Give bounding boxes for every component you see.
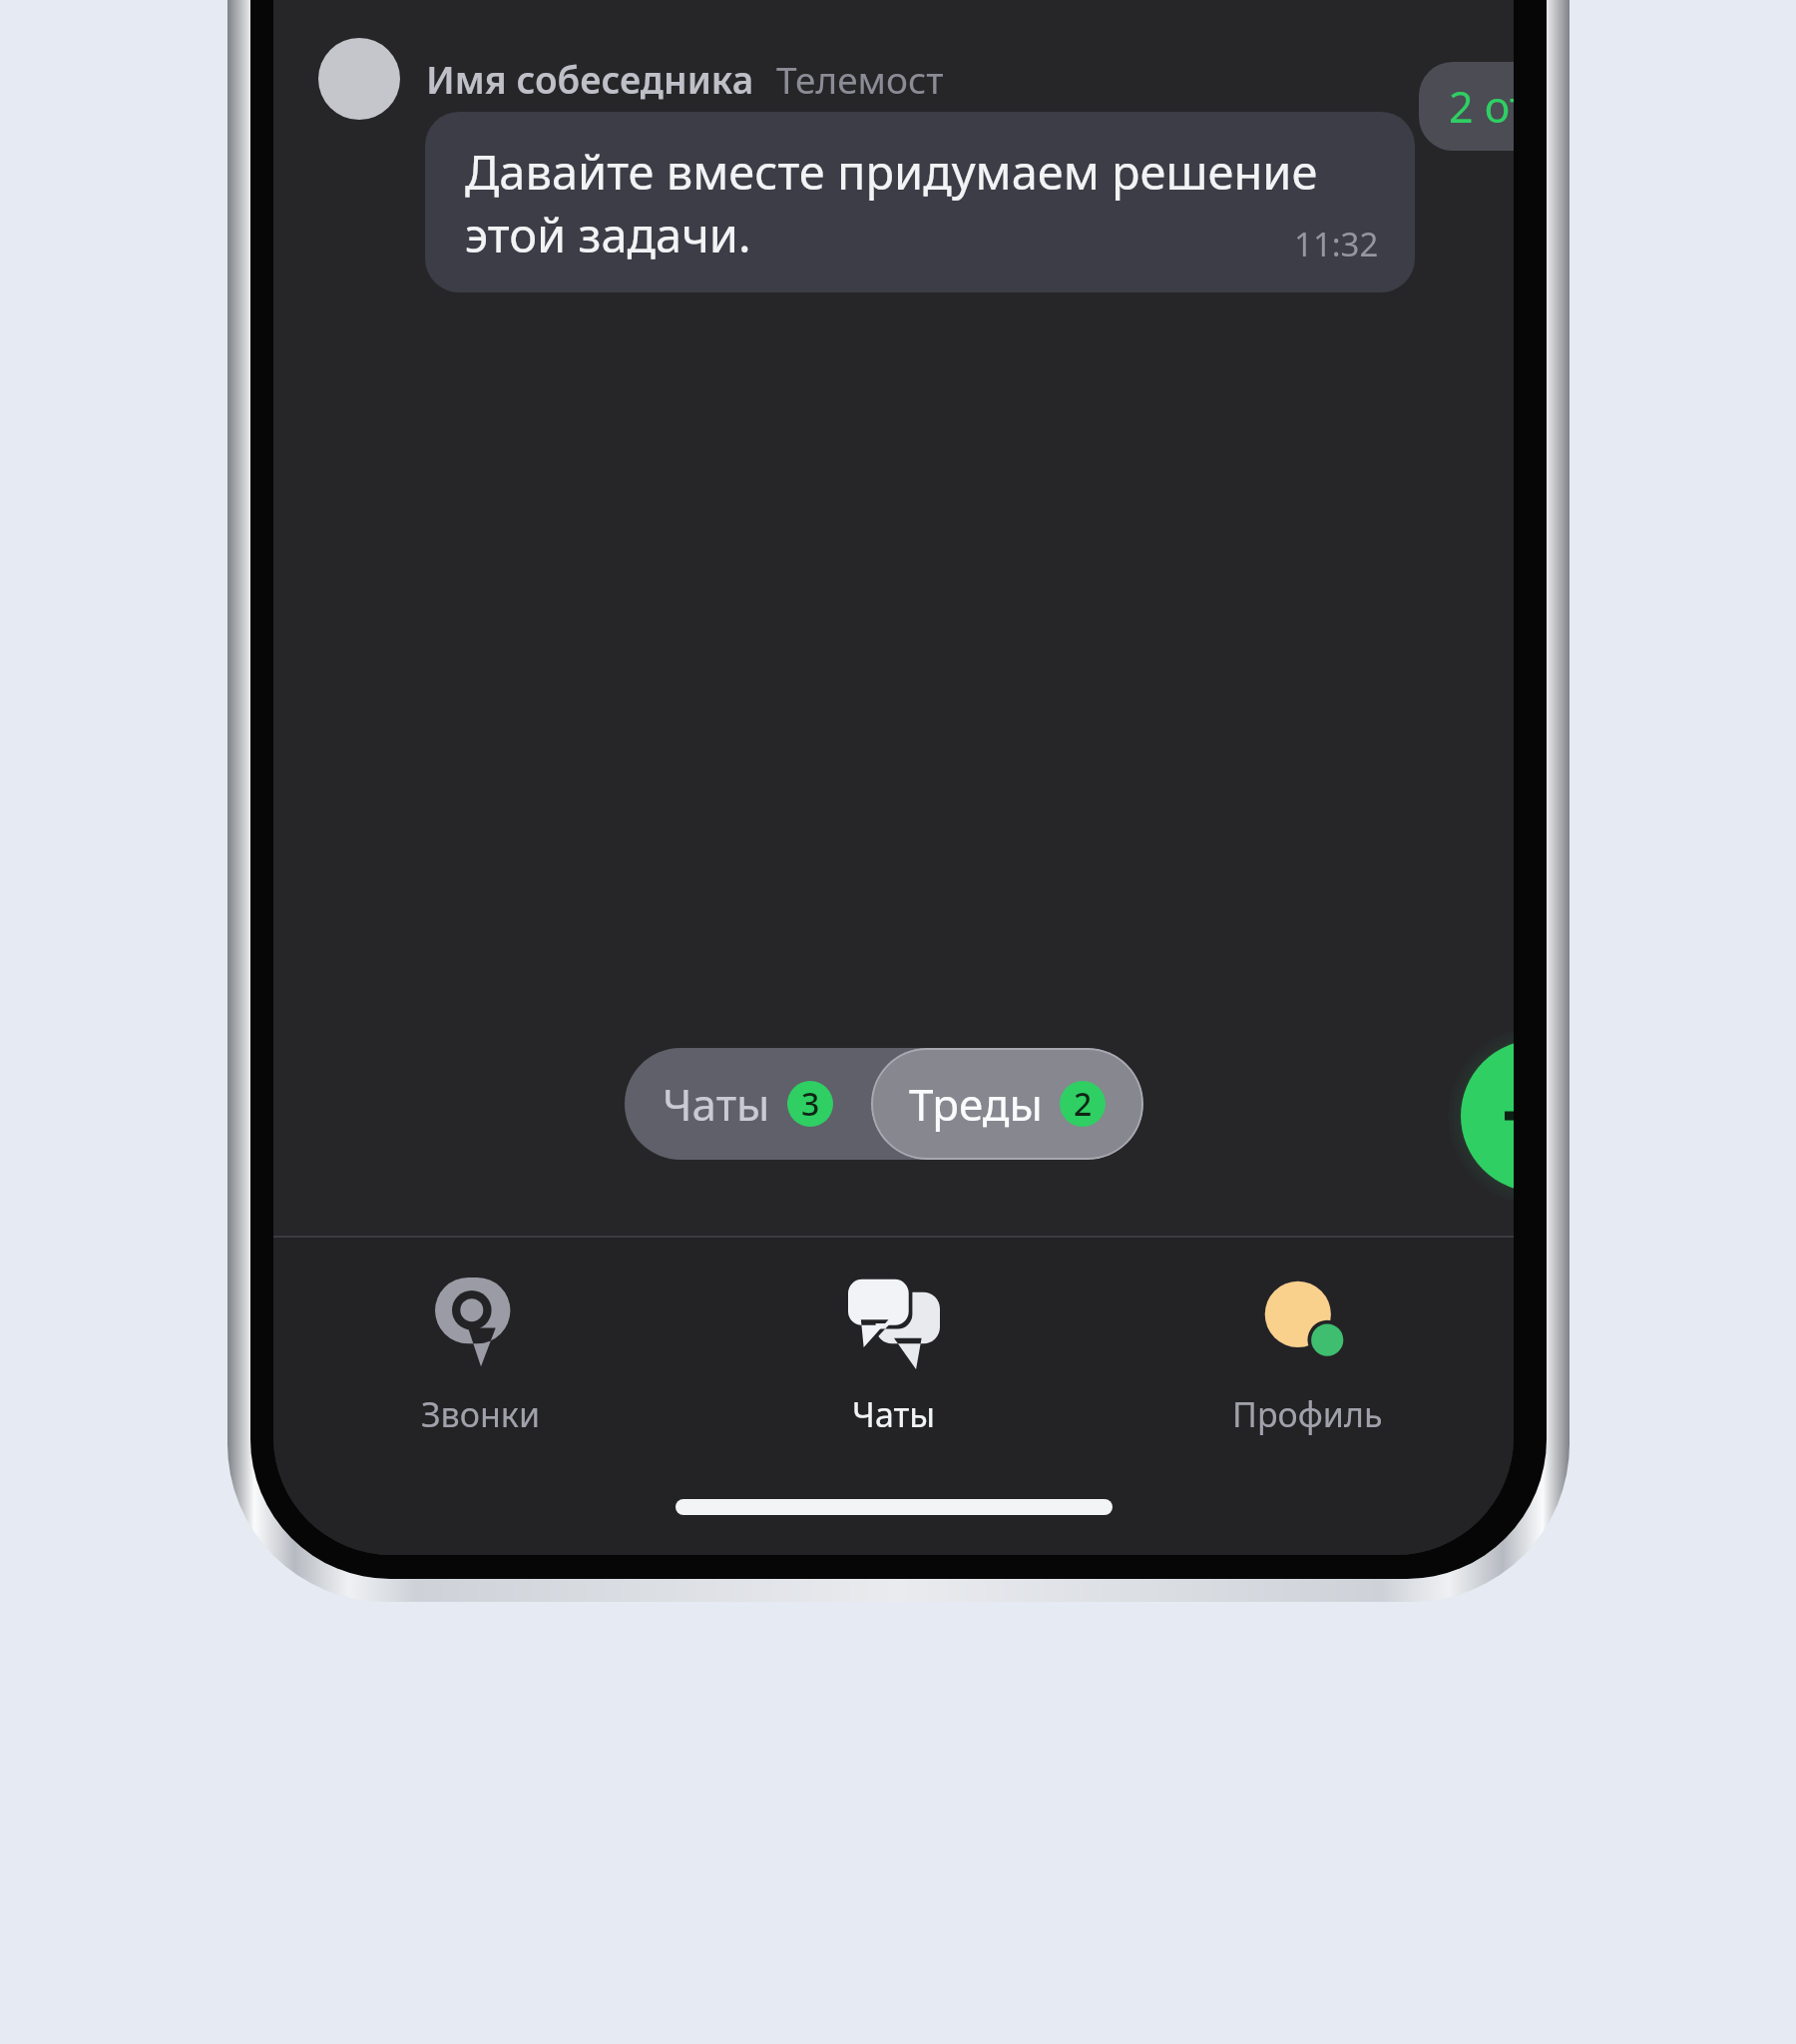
staticText: Имя собеседника [426, 54, 754, 104]
button[interactable]: Чаты [625, 1048, 871, 1160]
staticText: Давайте вместе придумаем решение этой за… [465, 140, 1318, 266]
button[interactable]: New chat [1461, 1040, 1514, 1192]
staticText: 3 [801, 1082, 820, 1126]
staticText: Звонки [421, 1391, 541, 1437]
button[interactable]: Звонки [273, 1272, 687, 1443]
staticText: Чаты [663, 1074, 770, 1134]
staticText: 2 ответа [1449, 77, 1514, 136]
staticText: Чаты [852, 1391, 936, 1437]
staticText: 2 [1074, 1082, 1093, 1126]
button[interactable]: Давайте вместе придумаем решение этой за… [425, 112, 1415, 292]
button[interactable]: Чаты [687, 1272, 1101, 1443]
staticText: Телемост [776, 54, 944, 104]
button[interactable]: Профиль [1101, 1272, 1514, 1443]
staticText: 11:32 [1294, 222, 1379, 266]
button[interactable]: 2 ответа [1419, 62, 1514, 151]
staticText: Треды [909, 1074, 1043, 1134]
button[interactable]: Треды [871, 1048, 1143, 1160]
staticText: Профиль [1232, 1391, 1383, 1437]
